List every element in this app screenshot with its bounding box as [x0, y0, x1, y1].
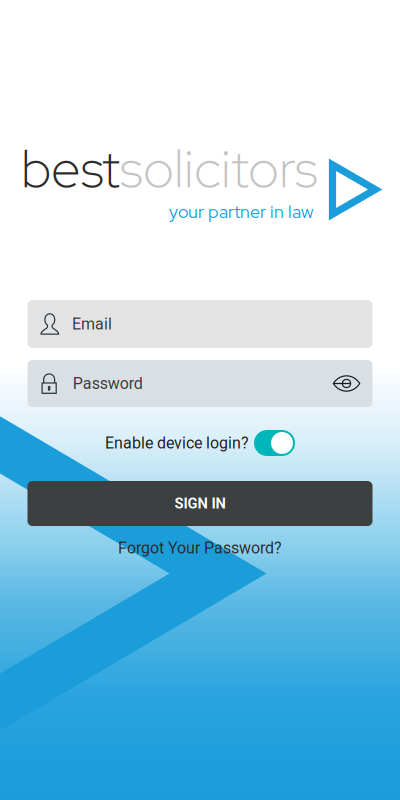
staticText: SIGN IN — [174, 495, 225, 512]
staticText: best — [21, 133, 120, 204]
staticText: your partner in law — [169, 200, 313, 223]
button[interactable]: SIGN IN — [27, 481, 372, 526]
staticText: solicitors — [120, 133, 318, 204]
staticText: Enable device login? — [105, 434, 249, 452]
staticText: Email — [72, 315, 112, 333]
staticText: Forgot Your Password? — [118, 539, 282, 557]
button[interactable]: Forgot Your Password? — [0, 535, 400, 561]
button[interactable]: Enable device login — [254, 430, 295, 456]
staticText: Password — [73, 374, 143, 393]
